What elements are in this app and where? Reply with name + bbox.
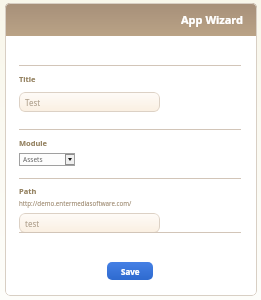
staticText: Title — [19, 74, 36, 84]
button[interactable]: Assets — [19, 153, 75, 166]
button[interactable]: Save — [107, 262, 153, 280]
other: Open module dropdown — [65, 154, 75, 165]
staticText: Assets — [23, 155, 43, 164]
button[interactable]: Test — [19, 92, 160, 112]
staticText: Module — [19, 138, 48, 148]
staticText: http://demo.entermediasoftware.com/ — [19, 199, 132, 207]
staticText: test — [25, 218, 40, 229]
button[interactable]: test — [19, 213, 160, 233]
staticText: Test — [25, 97, 41, 108]
staticText: Path — [19, 186, 37, 196]
staticText: Save — [121, 266, 140, 277]
staticText: App Wizard — [181, 12, 243, 27]
